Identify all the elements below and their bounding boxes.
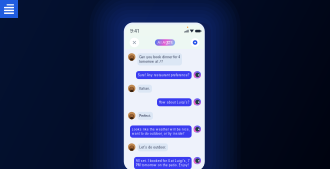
staticText: Perfect. bbox=[139, 114, 151, 118]
staticText: Sure! Any restaurant preference? bbox=[138, 73, 190, 77]
staticText: Italian. bbox=[139, 87, 150, 91]
staticText: How about Luigi's? bbox=[159, 100, 190, 104]
staticText: 9:41 bbox=[130, 28, 139, 34]
button[interactable]: Menu bbox=[0, 0, 18, 18]
staticText: AI Agent bbox=[157, 40, 172, 45]
staticText: Looks like the weather will be nice, bbox=[132, 127, 190, 131]
staticText: PM tomorrow on the patio. Enjoy! bbox=[136, 163, 189, 167]
staticText: tomorrow at 7? bbox=[139, 60, 163, 63]
staticText: Let's do outdoor. bbox=[139, 145, 166, 149]
button[interactable]: AI Agent bbox=[155, 39, 175, 46]
staticText: want to do outdoor, or try inside? bbox=[132, 132, 185, 136]
button[interactable]: Close bbox=[130, 38, 139, 47]
button[interactable]: Agent active bbox=[191, 38, 199, 47]
staticText: All set. I booked for 4 at Luigi's, 7 bbox=[136, 159, 190, 163]
staticText: Can you book dinner for 4 bbox=[139, 55, 180, 59]
